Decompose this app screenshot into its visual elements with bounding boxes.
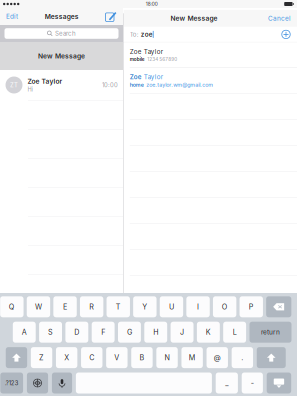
staticText: H (153, 328, 158, 336)
button[interactable]: A (13, 322, 36, 343)
button[interactable]: N (156, 347, 178, 368)
button[interactable]: I (186, 296, 210, 317)
button[interactable]: Hide keyboard (267, 372, 291, 393)
staticText: S (48, 328, 53, 336)
button[interactable]: E (53, 296, 77, 317)
staticText: V (114, 353, 119, 362)
staticText: X (64, 353, 69, 362)
staticText: return (261, 328, 280, 336)
button[interactable]: Shift (257, 347, 286, 368)
staticText: zoe (139, 30, 153, 38)
button[interactable]: Next keyboard (27, 372, 48, 393)
button[interactable]: Add contact (277, 27, 297, 42)
button[interactable]: J (171, 322, 193, 343)
staticText: 1234 567890 (147, 56, 177, 62)
button[interactable]: P (239, 296, 263, 317)
staticText: home (130, 82, 144, 88)
button[interactable] (76, 372, 212, 393)
button[interactable]: New Message (0, 42, 123, 70)
staticText: I (197, 302, 199, 311)
staticText: zoe.taylor.wm@gmail.com (146, 82, 213, 88)
staticText: . (241, 353, 243, 362)
staticText: A (22, 328, 27, 336)
button[interactable]: B (131, 347, 153, 368)
button[interactable]: F (92, 322, 115, 343)
staticText: F (101, 328, 105, 336)
staticText: Edit (6, 13, 18, 20)
staticText: 18:00 (146, 1, 158, 7)
button[interactable]: R (80, 296, 103, 317)
button[interactable]: Dictation (52, 372, 72, 393)
button[interactable]: H (144, 322, 167, 343)
staticText: E (63, 302, 67, 311)
staticText: Taylor (142, 73, 163, 81)
button[interactable]: V (106, 347, 127, 368)
staticText: T (116, 302, 121, 311)
button[interactable]: Edit (0, 8, 22, 25)
staticText: J (180, 328, 184, 336)
staticText: Z (39, 353, 44, 362)
staticText: .?123 (5, 379, 19, 387)
button[interactable]: Compose (101, 8, 123, 25)
button[interactable]: T (106, 296, 130, 317)
staticText: 10:00 (102, 81, 118, 89)
staticText: O (222, 302, 228, 311)
staticText: G (127, 328, 132, 336)
button[interactable]: .?123 (0, 372, 23, 393)
staticText: Cancel (268, 14, 291, 22)
button[interactable]: K (197, 322, 220, 343)
staticText: B (139, 353, 144, 362)
button[interactable]: Zoe Taylor (124, 42, 297, 67)
button[interactable]: S (39, 322, 62, 343)
staticText: @ (214, 353, 221, 362)
staticText: Hi (27, 86, 32, 93)
staticText: M (189, 353, 196, 362)
button[interactable]: G (118, 322, 141, 343)
staticText: C (89, 353, 94, 362)
button[interactable]: O (213, 296, 236, 317)
button[interactable]: X (56, 347, 77, 368)
button[interactable]: @ (206, 347, 228, 368)
button[interactable]: Shift (6, 347, 27, 368)
button[interactable]: Cancel (264, 10, 297, 27)
staticText: L (233, 328, 237, 336)
staticText: W (35, 302, 42, 311)
staticText: Messages (45, 12, 79, 21)
staticText: Y (142, 302, 147, 311)
staticText: U (169, 302, 174, 311)
staticText: Zoe Taylor (130, 48, 163, 55)
button[interactable]: - (242, 372, 263, 393)
button[interactable]: return (249, 322, 291, 343)
button[interactable]: Y (133, 296, 156, 317)
button[interactable]: C (81, 347, 102, 368)
button[interactable]: ZT (0, 70, 123, 100)
button[interactable]: Delete (266, 296, 291, 317)
button[interactable]: D (65, 322, 88, 343)
staticText: _ (225, 379, 228, 387)
button[interactable]: W (27, 296, 50, 317)
button[interactable]: _ (216, 372, 238, 393)
staticText: Zoe Taylor (27, 77, 62, 85)
button[interactable]: Q (0, 296, 23, 317)
button[interactable]: M (181, 347, 203, 368)
staticText: P (249, 302, 254, 311)
staticText: mobile (130, 56, 145, 62)
button[interactable]: . (232, 347, 253, 368)
staticText: N (164, 353, 169, 362)
staticText: To: (130, 31, 139, 38)
staticText: R (89, 302, 94, 311)
staticText: ZT (10, 81, 18, 89)
staticText: - (251, 379, 254, 387)
button[interactable]: Zoe (124, 68, 297, 93)
button[interactable]: L (223, 322, 246, 343)
staticText: Search (55, 30, 76, 37)
button[interactable]: Z (31, 347, 52, 368)
staticText: K (206, 328, 211, 336)
staticText: Q (9, 302, 15, 311)
staticText: Zoe (130, 73, 142, 81)
staticText: New Message (38, 52, 85, 60)
staticText: New Message (170, 14, 217, 22)
staticText: D (74, 328, 79, 336)
button[interactable]: U (160, 296, 183, 317)
